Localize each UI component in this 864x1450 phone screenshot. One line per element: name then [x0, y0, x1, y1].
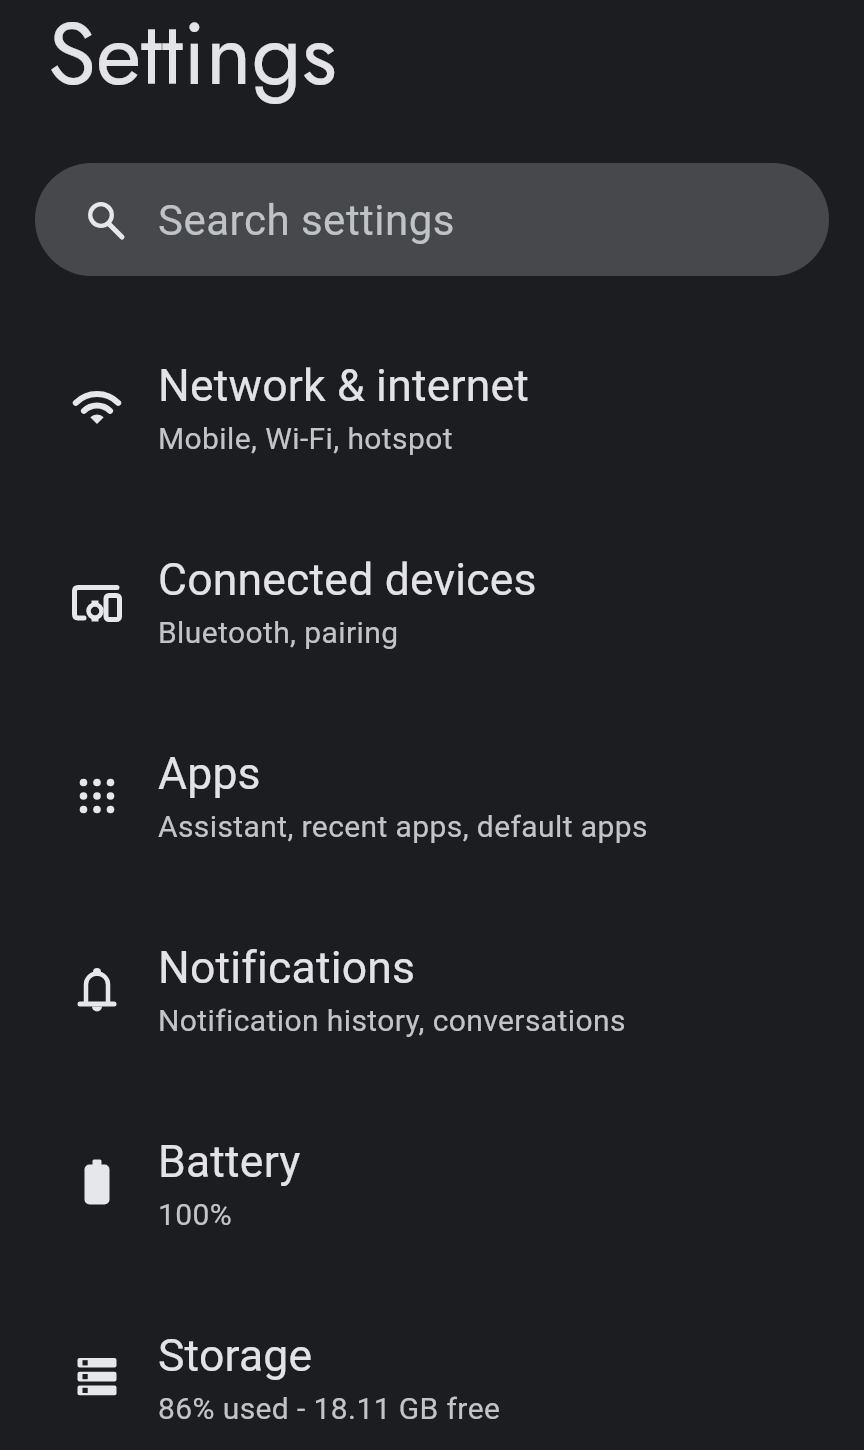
staticText: Assistant, recent apps, default apps [158, 809, 648, 844]
staticText: Notifications [158, 942, 416, 994]
button[interactable] [0, 898, 864, 1092]
staticText: Network & internet [158, 360, 530, 412]
button[interactable] [0, 1092, 864, 1286]
staticText: Apps [158, 748, 261, 800]
staticText: Bluetooth, pairing [158, 615, 399, 650]
button[interactable] [35, 163, 829, 276]
staticText: Connected devices [158, 554, 537, 606]
staticText: Settings [48, 0, 337, 116]
staticText: Notification history, conversations [158, 1003, 626, 1038]
staticText: Search settings [158, 196, 456, 245]
staticText: Mobile, Wi-Fi, hotspot [158, 421, 453, 456]
button[interactable] [0, 1286, 864, 1450]
button[interactable] [0, 510, 864, 704]
button[interactable] [0, 316, 864, 510]
staticText: Storage [158, 1330, 313, 1382]
staticText: 86% used - 18.11 GB free [158, 1391, 501, 1426]
staticText: 100% [158, 1197, 233, 1232]
button[interactable] [0, 704, 864, 898]
staticText: Battery [158, 1136, 301, 1188]
